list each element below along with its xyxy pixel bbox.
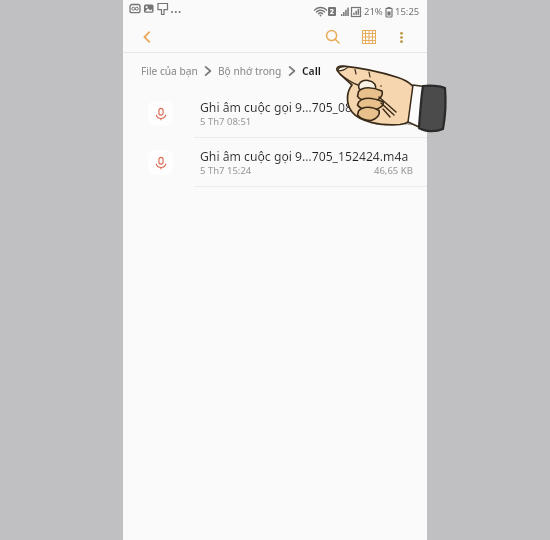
button[interactable]: File của bạn bbox=[141, 52, 198, 89]
button[interactable]: Call bbox=[302, 52, 321, 89]
staticText: 15:25 bbox=[395, 5, 420, 18]
staticText: 5 Th7 08:51 bbox=[200, 115, 252, 128]
staticText: File của bạn bbox=[141, 64, 198, 78]
staticText: 5 Th7 15:24 bbox=[200, 164, 252, 177]
button[interactable]: Back bbox=[135, 25, 159, 49]
button[interactable]: Search bbox=[321, 25, 345, 49]
staticText: Bộ nhớ trong bbox=[218, 64, 282, 78]
button[interactable]: Ghi âm cuộc gọi 9…705_0851 bbox=[123, 89, 427, 137]
button[interactable]: More options bbox=[390, 26, 412, 48]
button[interactable]: Ghi âm cuộc gọi 9…705_152424.m4a bbox=[123, 138, 427, 186]
staticText: Ghi âm cuộc gọi 9…705_0851 bbox=[200, 99, 366, 116]
button[interactable]: Bộ nhớ trong bbox=[218, 52, 282, 89]
staticText: 46,65 KB bbox=[374, 164, 413, 177]
button[interactable]: Grid view bbox=[357, 25, 381, 49]
staticText: 21% bbox=[364, 5, 383, 18]
staticText: 2 bbox=[330, 7, 334, 16]
staticText: 61,67 KB bbox=[374, 115, 413, 128]
staticText: Ghi âm cuộc gọi 9…705_152424.m4a bbox=[200, 148, 409, 165]
staticText: Call bbox=[302, 64, 321, 78]
